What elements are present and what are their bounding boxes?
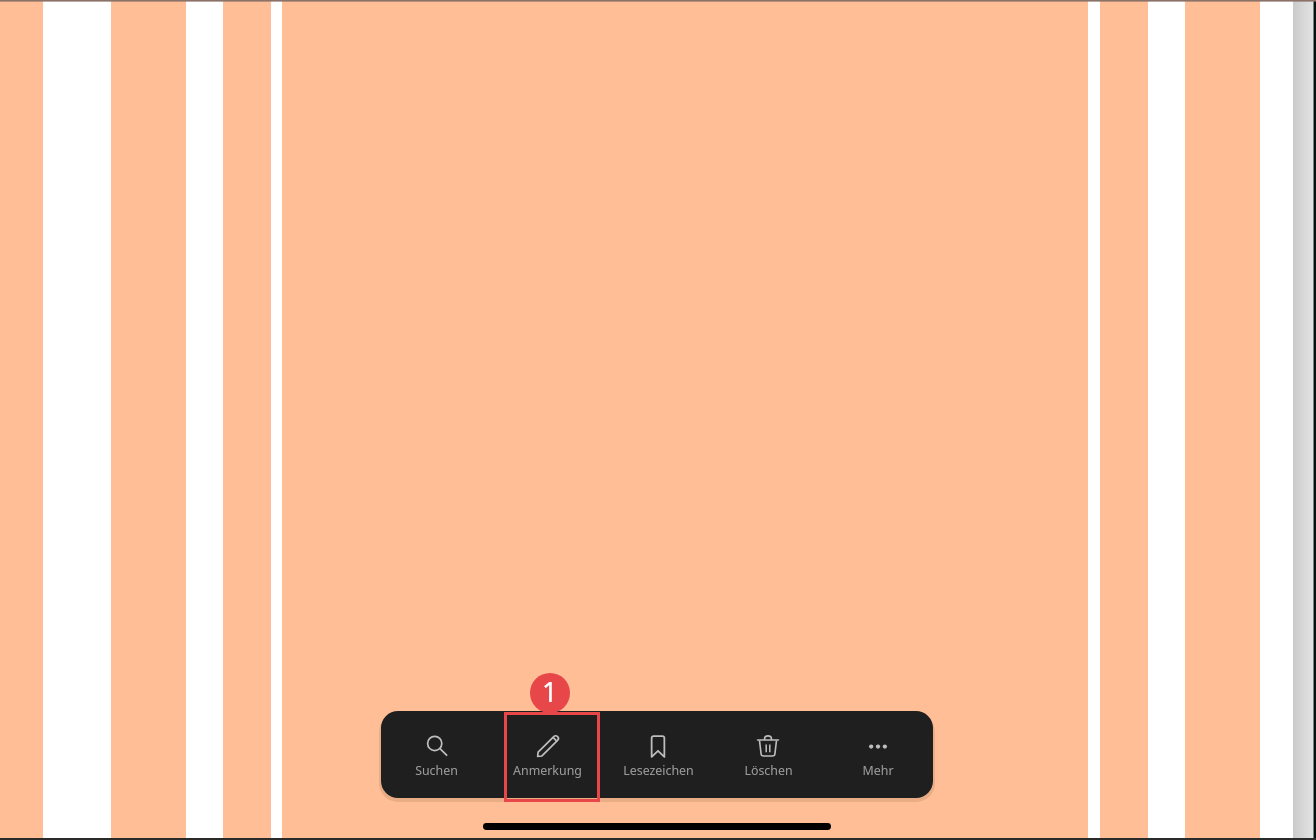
button[interactable]: Lesezeichen [603, 711, 713, 798]
staticText: Lesezeichen [623, 762, 694, 779]
staticText: 1 [542, 673, 558, 710]
staticText: Löschen [744, 762, 793, 779]
staticText: Suchen [415, 762, 458, 779]
button[interactable]: Suchen [381, 711, 492, 798]
button[interactable]: Löschen [713, 711, 823, 798]
other: Schritt 1 [530, 673, 570, 713]
button[interactable]: Anmerkung [492, 711, 603, 798]
staticText: Mehr [862, 762, 894, 779]
button[interactable]: Mehr [823, 711, 933, 798]
staticText: Anmerkung [513, 762, 582, 779]
